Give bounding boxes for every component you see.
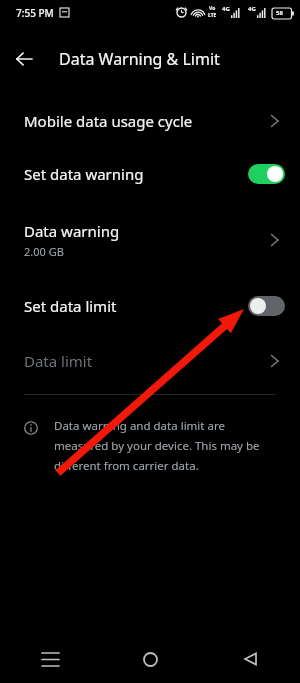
- staticText: Set data limit: [24, 296, 117, 316]
- button[interactable]: Recent apps: [0, 635, 100, 683]
- staticText: 4G: [248, 5, 256, 13]
- staticText: Set data warning: [24, 164, 144, 184]
- staticText: Data warning and data limit are: [54, 418, 225, 434]
- button[interactable]: Home: [100, 635, 200, 683]
- button[interactable]: Data limit: [0, 338, 300, 384]
- staticText: Mobile data usage cycle: [24, 111, 193, 131]
- staticText: 7:55 PM: [16, 6, 54, 20]
- button[interactable]: Back: [10, 45, 38, 73]
- button[interactable]: Back: [200, 635, 300, 683]
- staticText: Data warning: [24, 221, 120, 241]
- button[interactable]: Set data warning: [0, 152, 300, 196]
- button[interactable]: Set data limit: [0, 284, 300, 328]
- button[interactable]: Data warning: [0, 212, 300, 268]
- staticText: 58: [276, 9, 283, 17]
- staticText: measured by your device. This may be: [54, 438, 260, 454]
- staticText: Data Warning & Limit: [59, 48, 220, 70]
- staticText: Vo: [209, 5, 216, 12]
- button[interactable]: Mobile data usage cycle: [0, 98, 300, 144]
- staticText: LTE: [208, 12, 217, 19]
- staticText: 4G: [222, 5, 230, 13]
- staticText: different from carrier data.: [54, 458, 199, 474]
- staticText: 2.00 GB: [24, 244, 64, 259]
- staticText: Data limit: [24, 351, 93, 371]
